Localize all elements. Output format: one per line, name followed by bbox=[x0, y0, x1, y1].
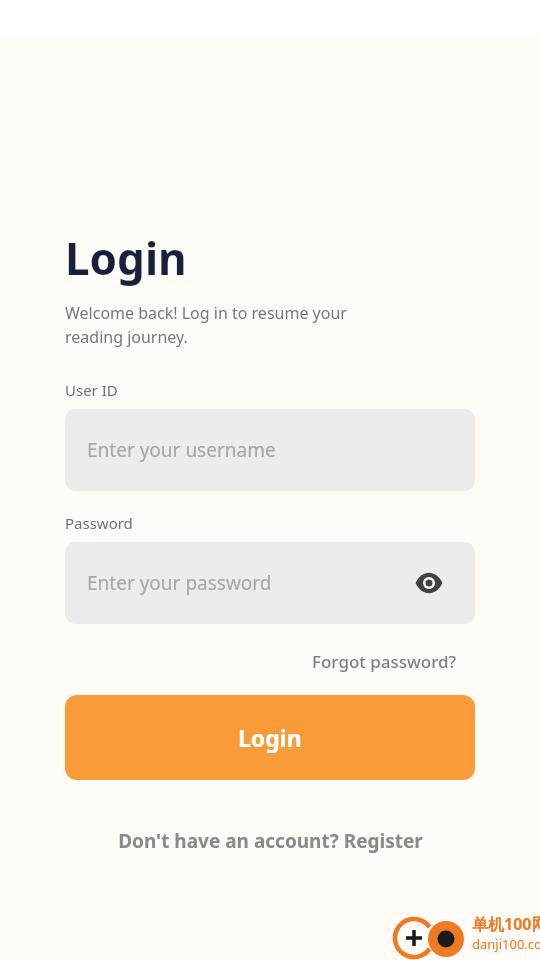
button[interactable]: Enter your username bbox=[65, 409, 475, 491]
button[interactable]: Login bbox=[65, 695, 475, 780]
button[interactable]: Forgot password? bbox=[312, 650, 457, 673]
staticText: User ID bbox=[65, 380, 118, 400]
button[interactable]: Enter your password bbox=[65, 542, 475, 624]
staticText: Welcome back! Log in to resume your read… bbox=[65, 302, 347, 348]
staticText: Password bbox=[65, 513, 133, 533]
button[interactable]: Show password bbox=[412, 566, 446, 600]
staticText: danji100.com bbox=[472, 935, 540, 953]
staticText: Enter your password bbox=[87, 570, 272, 596]
staticText: Forgot password? bbox=[312, 650, 457, 673]
staticText: 单机100网 bbox=[472, 913, 540, 935]
button[interactable]: Don't have an account? Register bbox=[118, 828, 423, 854]
staticText: Login bbox=[238, 722, 302, 753]
staticText: Enter your username bbox=[87, 437, 276, 463]
staticText: Login bbox=[65, 228, 187, 288]
staticText: Don't have an account? Register bbox=[118, 828, 423, 854]
